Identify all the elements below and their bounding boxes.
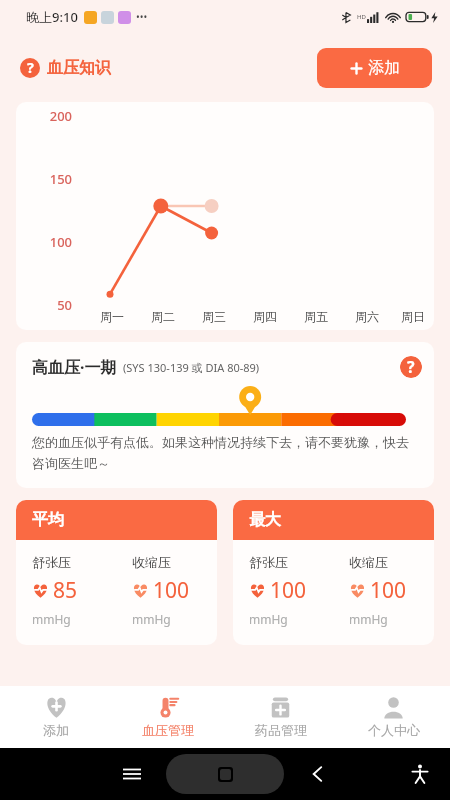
- staticText: mmHg: [32, 611, 71, 627]
- staticText: 周五: [304, 309, 328, 324]
- button[interactable]: 药品管理: [224, 686, 337, 748]
- staticText: 100: [153, 576, 190, 605]
- staticText: 血压管理: [142, 722, 194, 738]
- staticText: 添加: [43, 722, 69, 738]
- staticText: 150: [28, 170, 72, 188]
- button[interactable]: 菜单: [123, 765, 141, 783]
- staticText: 舒张压: [249, 554, 288, 570]
- staticText: 舒张压: [32, 554, 71, 570]
- button[interactable]: ?: [18, 54, 113, 82]
- staticText: 100: [370, 576, 407, 605]
- button[interactable]: 帮助: [400, 356, 422, 378]
- button[interactable]: 添加: [317, 48, 432, 88]
- staticText: 100: [28, 233, 72, 251]
- button[interactable]: 返回: [309, 765, 327, 783]
- staticText: 血压知识: [47, 58, 111, 78]
- staticText: 周四: [253, 309, 277, 324]
- staticText: 周六: [355, 309, 379, 324]
- staticText: 平均: [32, 510, 64, 530]
- staticText: 最大: [249, 510, 281, 530]
- button[interactable]: 无障碍: [410, 764, 430, 784]
- staticText: 高血压·一期: [32, 356, 117, 378]
- staticText: 周三: [202, 309, 226, 324]
- button[interactable]: 最大: [233, 500, 434, 645]
- staticText: ?: [27, 58, 34, 78]
- staticText: 您的血压似乎有点低。如果这种情况持续下去，请不要犹豫，快去咨询医生吧～: [32, 434, 416, 472]
- staticText: 收缩压: [349, 554, 388, 570]
- staticText: mmHg: [349, 611, 388, 627]
- staticText: 收缩压: [132, 554, 171, 570]
- staticText: 添加: [368, 58, 400, 78]
- staticText: •••: [136, 10, 148, 24]
- staticText: 50: [28, 296, 72, 314]
- staticText: mmHg: [249, 611, 288, 627]
- staticText: 晚上9:10: [26, 8, 78, 26]
- staticText: ?: [407, 356, 415, 378]
- staticText: 周二: [151, 309, 175, 324]
- button[interactable]: 添加: [0, 686, 112, 748]
- staticText: 药品管理: [255, 722, 307, 738]
- button[interactable]: 个人中心: [337, 686, 450, 748]
- staticText: 100: [270, 576, 307, 605]
- staticText: (SYS 130-139 或 DIA 80-89): [123, 360, 260, 375]
- button[interactable]: 血压管理: [112, 686, 224, 748]
- staticText: 周一: [100, 309, 124, 324]
- staticText: mmHg: [132, 611, 171, 627]
- staticText: 85: [53, 576, 78, 605]
- staticText: 个人中心: [368, 722, 420, 738]
- button[interactable]: 平均: [16, 500, 217, 645]
- staticText: 200: [28, 107, 72, 125]
- staticText: HD: [357, 13, 366, 21]
- staticText: 周日: [401, 309, 425, 324]
